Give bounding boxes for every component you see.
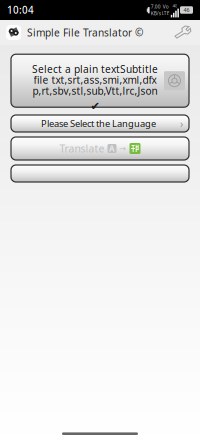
staticText: Select a plain textSubtitle bbox=[32, 62, 158, 76]
staticText: KB/s bbox=[151, 10, 161, 16]
staticText: file txt,srt,ass,smi,xml,dfx bbox=[33, 73, 156, 87]
staticText: Simple File Translator © bbox=[21, 26, 143, 39]
staticText: Translate bbox=[59, 141, 104, 156]
staticText: → bbox=[119, 144, 126, 153]
staticText: A bbox=[109, 143, 115, 154]
button[interactable]: Translate bbox=[11, 137, 189, 160]
button[interactable]: Select a plain textSubtitle bbox=[11, 57, 189, 110]
staticText: Please Select the Language bbox=[41, 117, 156, 130]
staticText: p,rt,sbv,stl,sub,Vtt,lrc,Json bbox=[32, 84, 157, 98]
button[interactable]: Please Select the Language bbox=[11, 115, 189, 132]
staticText: LTE bbox=[162, 10, 170, 16]
staticText: 4G bbox=[172, 3, 177, 8]
staticText: 7.00 bbox=[151, 3, 161, 10]
button[interactable]: Action bbox=[11, 165, 189, 182]
staticText: Vo bbox=[163, 3, 169, 10]
staticText bbox=[150, 7, 151, 13]
button[interactable]: Settings bbox=[172, 23, 194, 42]
staticText: ✔ bbox=[90, 100, 99, 113]
staticText: › bbox=[180, 116, 183, 131]
staticText: 10:04 bbox=[7, 3, 34, 17]
staticText: 46 bbox=[183, 6, 189, 14]
